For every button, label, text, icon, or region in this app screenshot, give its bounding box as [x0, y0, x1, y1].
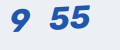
staticText: 9 — [9, 0, 30, 38]
staticText: 55 — [49, 0, 91, 38]
